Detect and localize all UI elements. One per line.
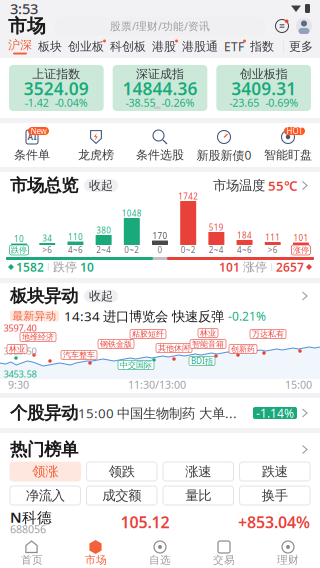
staticText: 11:30/13:00 bbox=[128, 377, 186, 392]
button[interactable]: 理财 bbox=[256, 537, 320, 568]
staticText: 港股 bbox=[152, 39, 176, 54]
staticText: 首页 bbox=[21, 553, 43, 566]
button[interactable]: 沪深 bbox=[5, 36, 35, 56]
button[interactable]: 净流入 bbox=[10, 486, 80, 505]
staticText: 收起 bbox=[89, 178, 113, 193]
staticText: 市场总览 bbox=[10, 175, 78, 196]
staticText: 创业板 bbox=[68, 39, 104, 54]
button[interactable]: 涨速 bbox=[163, 462, 233, 481]
button[interactable]: 消息 bbox=[274, 17, 290, 35]
staticText: 涨停 bbox=[243, 260, 267, 274]
staticText: N科德 bbox=[10, 507, 52, 527]
button[interactable]: 港股 bbox=[149, 36, 179, 56]
staticText: 170 bbox=[152, 231, 167, 241]
staticText: 万达私有 bbox=[252, 329, 284, 339]
button[interactable]: 上证指数 bbox=[9, 65, 104, 111]
staticText: 深证成指 bbox=[136, 67, 184, 81]
staticText: New bbox=[30, 126, 46, 136]
staticText: 9:30 bbox=[8, 377, 29, 392]
staticText: 跌速 bbox=[262, 463, 288, 480]
button[interactable]: HOT bbox=[256, 127, 320, 161]
button[interactable]: 个人中心 bbox=[290, 18, 312, 34]
button[interactable]: 新股新债0 bbox=[192, 127, 256, 161]
button[interactable]: 领涨 bbox=[10, 462, 80, 481]
staticText: 更多 bbox=[289, 39, 313, 54]
button[interactable]: 龙虎榜 bbox=[64, 127, 128, 161]
staticText: 地维经济 bbox=[22, 332, 54, 342]
staticText: 成交额 bbox=[102, 487, 141, 504]
staticText: 交易 bbox=[213, 553, 235, 566]
staticText: 板块 bbox=[38, 39, 62, 54]
button[interactable]: 条件选股 bbox=[128, 127, 192, 161]
button[interactable]: 板块 bbox=[35, 36, 65, 56]
button[interactable]: 交易 bbox=[192, 537, 256, 568]
staticText: 2~4 bbox=[96, 245, 111, 255]
staticText: 自选 bbox=[149, 553, 171, 566]
staticText: 林业 bbox=[200, 328, 216, 338]
button[interactable]: 收起 bbox=[84, 179, 118, 192]
button[interactable]: 港股通 bbox=[179, 36, 221, 56]
staticText: 0~2 bbox=[181, 245, 196, 255]
staticText: 2~4 bbox=[209, 245, 224, 255]
staticText: BDI指 bbox=[191, 356, 213, 366]
staticText: 创新药 bbox=[231, 344, 255, 354]
button[interactable]: 量比 bbox=[163, 486, 233, 505]
staticText: 理财 bbox=[277, 553, 299, 566]
staticText: 板块异动 bbox=[10, 285, 78, 307]
staticText: 4~6 bbox=[237, 245, 252, 255]
staticText: 3525.50 bbox=[3, 345, 36, 357]
button[interactable]: 跌速 bbox=[239, 462, 310, 481]
button[interactable]: 深证成指 bbox=[113, 65, 207, 111]
staticText: 3409.31 bbox=[231, 77, 296, 100]
button[interactable]: 领跌 bbox=[86, 462, 157, 481]
button[interactable]: 股票/理财/功能/资讯 bbox=[54, 17, 266, 35]
staticText: 其他休闲 bbox=[158, 343, 190, 353]
button[interactable]: 首页 bbox=[0, 537, 64, 568]
staticText: 1742 bbox=[178, 191, 198, 202]
button[interactable]: 自选 bbox=[128, 537, 192, 568]
button[interactable]: 换手 bbox=[239, 486, 310, 505]
staticText: 条件单 bbox=[14, 148, 50, 162]
staticText: AI bbox=[27, 132, 36, 142]
button[interactable]: 市场 bbox=[64, 537, 128, 568]
staticText: 4~6 bbox=[68, 245, 83, 255]
staticText: -23.65 -0.69% bbox=[229, 95, 298, 110]
staticText: ETF bbox=[224, 38, 244, 54]
staticText: 领跌 bbox=[109, 463, 135, 480]
button[interactable]: 更多 bbox=[287, 36, 315, 56]
staticText: 龙虎榜 bbox=[78, 148, 114, 162]
staticText: 3:53 bbox=[10, 0, 38, 18]
button[interactable]: 创业板指 bbox=[216, 65, 311, 111]
staticText: 1048 bbox=[122, 208, 142, 219]
staticText: 最新异动 bbox=[12, 309, 56, 322]
staticText: 380 bbox=[96, 225, 111, 236]
staticText: 110 bbox=[68, 232, 83, 242]
staticText: 519 bbox=[209, 222, 224, 233]
button[interactable]: 收起 bbox=[84, 289, 118, 302]
button[interactable]: 个股异动 bbox=[0, 398, 320, 428]
button[interactable]: 成交额 bbox=[86, 486, 157, 505]
staticText: 热门榜单 bbox=[10, 439, 78, 460]
staticText: 1582 bbox=[16, 259, 44, 275]
staticText: HOT bbox=[286, 126, 302, 136]
staticText: 科创板 bbox=[110, 39, 146, 54]
button[interactable]: 指数 bbox=[247, 36, 277, 56]
staticText: 港股通 bbox=[182, 39, 218, 54]
staticText: 创业板指 bbox=[240, 67, 288, 81]
button[interactable]: AI bbox=[0, 127, 64, 161]
staticText: 0~2 bbox=[124, 245, 139, 255]
staticText: 跌停 bbox=[11, 245, 27, 255]
button[interactable]: 创业板 bbox=[65, 36, 107, 56]
staticText: 涨速 bbox=[185, 463, 211, 480]
staticText: 粘胶短纤 bbox=[132, 329, 164, 339]
button[interactable]: 科创板 bbox=[107, 36, 149, 56]
staticText: 领涨 bbox=[32, 463, 58, 480]
staticText: 股票/理财/功能/资讯 bbox=[110, 19, 210, 33]
staticText: 净流入 bbox=[26, 487, 65, 504]
staticText: 钢铁金版 bbox=[100, 339, 132, 349]
button[interactable]: ETF bbox=[221, 36, 247, 56]
staticText: 2657 bbox=[276, 259, 304, 275]
staticText: 184 bbox=[237, 230, 252, 241]
staticText: 智能音箱 bbox=[192, 339, 224, 349]
staticText: >6 bbox=[42, 245, 52, 255]
